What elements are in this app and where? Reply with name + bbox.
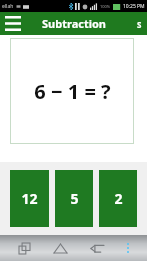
button[interactable]: Recent apps xyxy=(11,235,37,261)
staticText: S xyxy=(137,19,142,30)
staticText: 10:25 PM xyxy=(123,3,145,10)
staticText: ellah xyxy=(2,3,14,10)
button[interactable]: 6 − 1 = ? xyxy=(10,38,134,144)
button[interactable]: Back xyxy=(84,235,110,261)
button[interactable]: 2 xyxy=(99,170,137,227)
staticText: 100% xyxy=(100,4,111,9)
staticText: 6 − 1 = ? xyxy=(34,78,111,105)
button[interactable]: Open navigation menu xyxy=(3,13,23,34)
button[interactable]: Score xyxy=(134,14,145,34)
button[interactable]: 5 xyxy=(55,170,93,227)
staticText: 5 xyxy=(70,189,79,208)
button[interactable]: More options xyxy=(120,235,136,261)
button[interactable]: 12 xyxy=(10,170,49,227)
staticText: 2 xyxy=(114,189,123,208)
staticText: 12 xyxy=(21,189,38,208)
staticText: Subtraction xyxy=(42,16,106,31)
button[interactable]: Home xyxy=(47,235,73,261)
